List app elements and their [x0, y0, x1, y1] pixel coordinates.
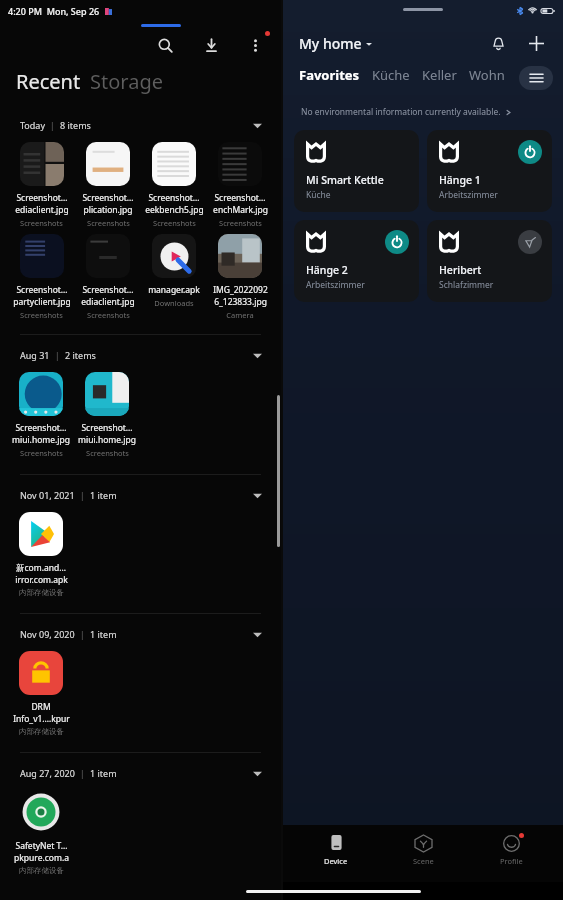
- staticText: Arbeitszimmer: [439, 189, 498, 201]
- button[interactable]: Collapse group: [249, 347, 265, 363]
- staticText: Hänge 2: [306, 263, 348, 277]
- staticText: |: [75, 628, 90, 640]
- button[interactable]: Screenshot…: [8, 142, 75, 228]
- button[interactable]: Search: [153, 33, 177, 57]
- staticText: Screenshot…: [16, 192, 68, 204]
- staticText: 内部存储设备: [19, 866, 64, 875]
- button[interactable]: Add device: [523, 30, 549, 56]
- staticText: Device: [324, 856, 348, 866]
- button[interactable]: All rooms: [519, 66, 553, 90]
- staticText: Scene: [413, 856, 434, 866]
- staticText: Screenshot…: [16, 284, 68, 296]
- staticText: SafetyNet T…: [15, 840, 68, 852]
- staticText: Screenshot…: [214, 192, 266, 204]
- staticText: My home: [299, 34, 362, 53]
- button[interactable]: Screenshot…: [8, 372, 74, 458]
- button[interactable]: Keller: [422, 66, 457, 84]
- staticText: Heribert: [439, 263, 482, 277]
- staticText: Screenshots: [219, 218, 262, 228]
- staticText: Aug 27, 2020: [20, 767, 75, 779]
- staticText: Downloads: [154, 298, 194, 308]
- staticText: Screenshot…: [148, 192, 200, 204]
- button[interactable]: Device: [301, 833, 371, 868]
- staticText: Screenshots: [20, 448, 63, 458]
- staticText: 2 items: [65, 349, 96, 361]
- staticText: Camera: [226, 310, 254, 320]
- staticText: Recent: [16, 68, 81, 95]
- staticText: Screenshots: [87, 218, 130, 228]
- staticText: miui.home.jpg: [12, 434, 70, 446]
- staticText: 内部存储设备: [19, 727, 64, 736]
- staticText: Screenshot…: [81, 422, 133, 434]
- button[interactable]: Wohn: [469, 66, 505, 84]
- button[interactable]: Profile: [476, 833, 546, 868]
- button[interactable]: Toggle Heribert: [518, 230, 542, 254]
- button[interactable]: manager.apk: [141, 234, 207, 308]
- button[interactable]: Screenshot…: [75, 234, 141, 320]
- staticText: Profile: [500, 856, 523, 866]
- staticText: Hänge 1: [439, 173, 481, 187]
- staticText: pkpure.com.a: [14, 852, 69, 864]
- button[interactable]: Collapse group: [249, 117, 265, 133]
- button[interactable]: Screenshot…: [207, 142, 273, 228]
- button[interactable]: Recent: [16, 68, 81, 95]
- button[interactable]: Screenshot…: [74, 372, 140, 458]
- staticText: DRM: [31, 701, 51, 713]
- staticText: 1 item: [90, 767, 117, 779]
- button[interactable]: Toggle Heribert: [427, 220, 552, 302]
- button[interactable]: Mi Smart Kettle: [294, 130, 419, 212]
- button[interactable]: Favorites: [299, 66, 360, 84]
- button[interactable]: 新com.and…: [8, 512, 74, 597]
- button[interactable]: Collapse group: [249, 626, 265, 642]
- staticText: Arbeitszimmer: [306, 279, 365, 291]
- button[interactable]: IMG_2022092: [207, 234, 273, 320]
- staticText: Küche: [306, 189, 331, 201]
- staticText: Screenshots: [86, 448, 129, 458]
- staticText: Storage: [90, 68, 163, 95]
- button[interactable]: My home: [299, 34, 372, 53]
- staticText: Küche: [372, 66, 410, 84]
- staticText: Wohn: [469, 66, 505, 84]
- staticText: Info_v1.…kpur: [13, 713, 70, 725]
- button[interactable]: Küche: [372, 66, 410, 84]
- staticText: IMG_2022092: [213, 284, 268, 296]
- button[interactable]: More options: [243, 33, 267, 57]
- staticText: 新com.and…: [16, 562, 66, 574]
- staticText: Screenshot…: [82, 192, 134, 204]
- button[interactable]: Turn off Hänge 2: [385, 230, 409, 254]
- staticText: Nov 09, 2020: [20, 628, 75, 640]
- button[interactable]: Turn off Hänge 1: [518, 140, 542, 164]
- staticText: Schlafzimmer: [439, 279, 494, 291]
- button[interactable]: Scene: [388, 833, 458, 868]
- staticText: plication.jpg: [83, 204, 133, 216]
- staticText: 1 item: [90, 628, 117, 640]
- button[interactable]: Screenshot…: [141, 142, 207, 228]
- button[interactable]: DRM: [8, 651, 74, 736]
- button[interactable]: Turn off Hänge 1: [427, 130, 552, 212]
- staticText: Screenshot…: [15, 422, 67, 434]
- staticText: ediaclient.jpg: [15, 204, 69, 216]
- staticText: eekbench5.jpg: [145, 204, 204, 216]
- staticText: Screenshots: [20, 310, 63, 320]
- staticText: Screenshots: [87, 310, 130, 320]
- button[interactable]: Screenshot…: [75, 142, 141, 228]
- button[interactable]: Downloads: [199, 33, 223, 57]
- staticText: No environmental information currently a…: [301, 106, 501, 118]
- staticText: Nov 01, 2021: [20, 489, 75, 501]
- button[interactable]: SafetyNet T…: [8, 790, 74, 875]
- staticText: Screenshot…: [82, 284, 134, 296]
- staticText: |: [45, 119, 60, 131]
- staticText: Keller: [422, 66, 457, 84]
- button[interactable]: Notifications: [485, 30, 511, 56]
- button[interactable]: Collapse group: [249, 765, 265, 781]
- button[interactable]: Screenshot…: [8, 234, 75, 320]
- button[interactable]: Storage: [90, 68, 163, 95]
- staticText: |: [75, 489, 90, 501]
- button[interactable]: Turn off Hänge 2: [294, 220, 419, 302]
- staticText: 1 item: [90, 489, 117, 501]
- staticText: Today: [20, 119, 45, 131]
- button[interactable]: Collapse group: [249, 487, 265, 503]
- staticText: 8 items: [60, 119, 91, 131]
- button[interactable]: No environmental information currently a…: [301, 106, 563, 118]
- staticText: 内部存储设备: [19, 588, 64, 597]
